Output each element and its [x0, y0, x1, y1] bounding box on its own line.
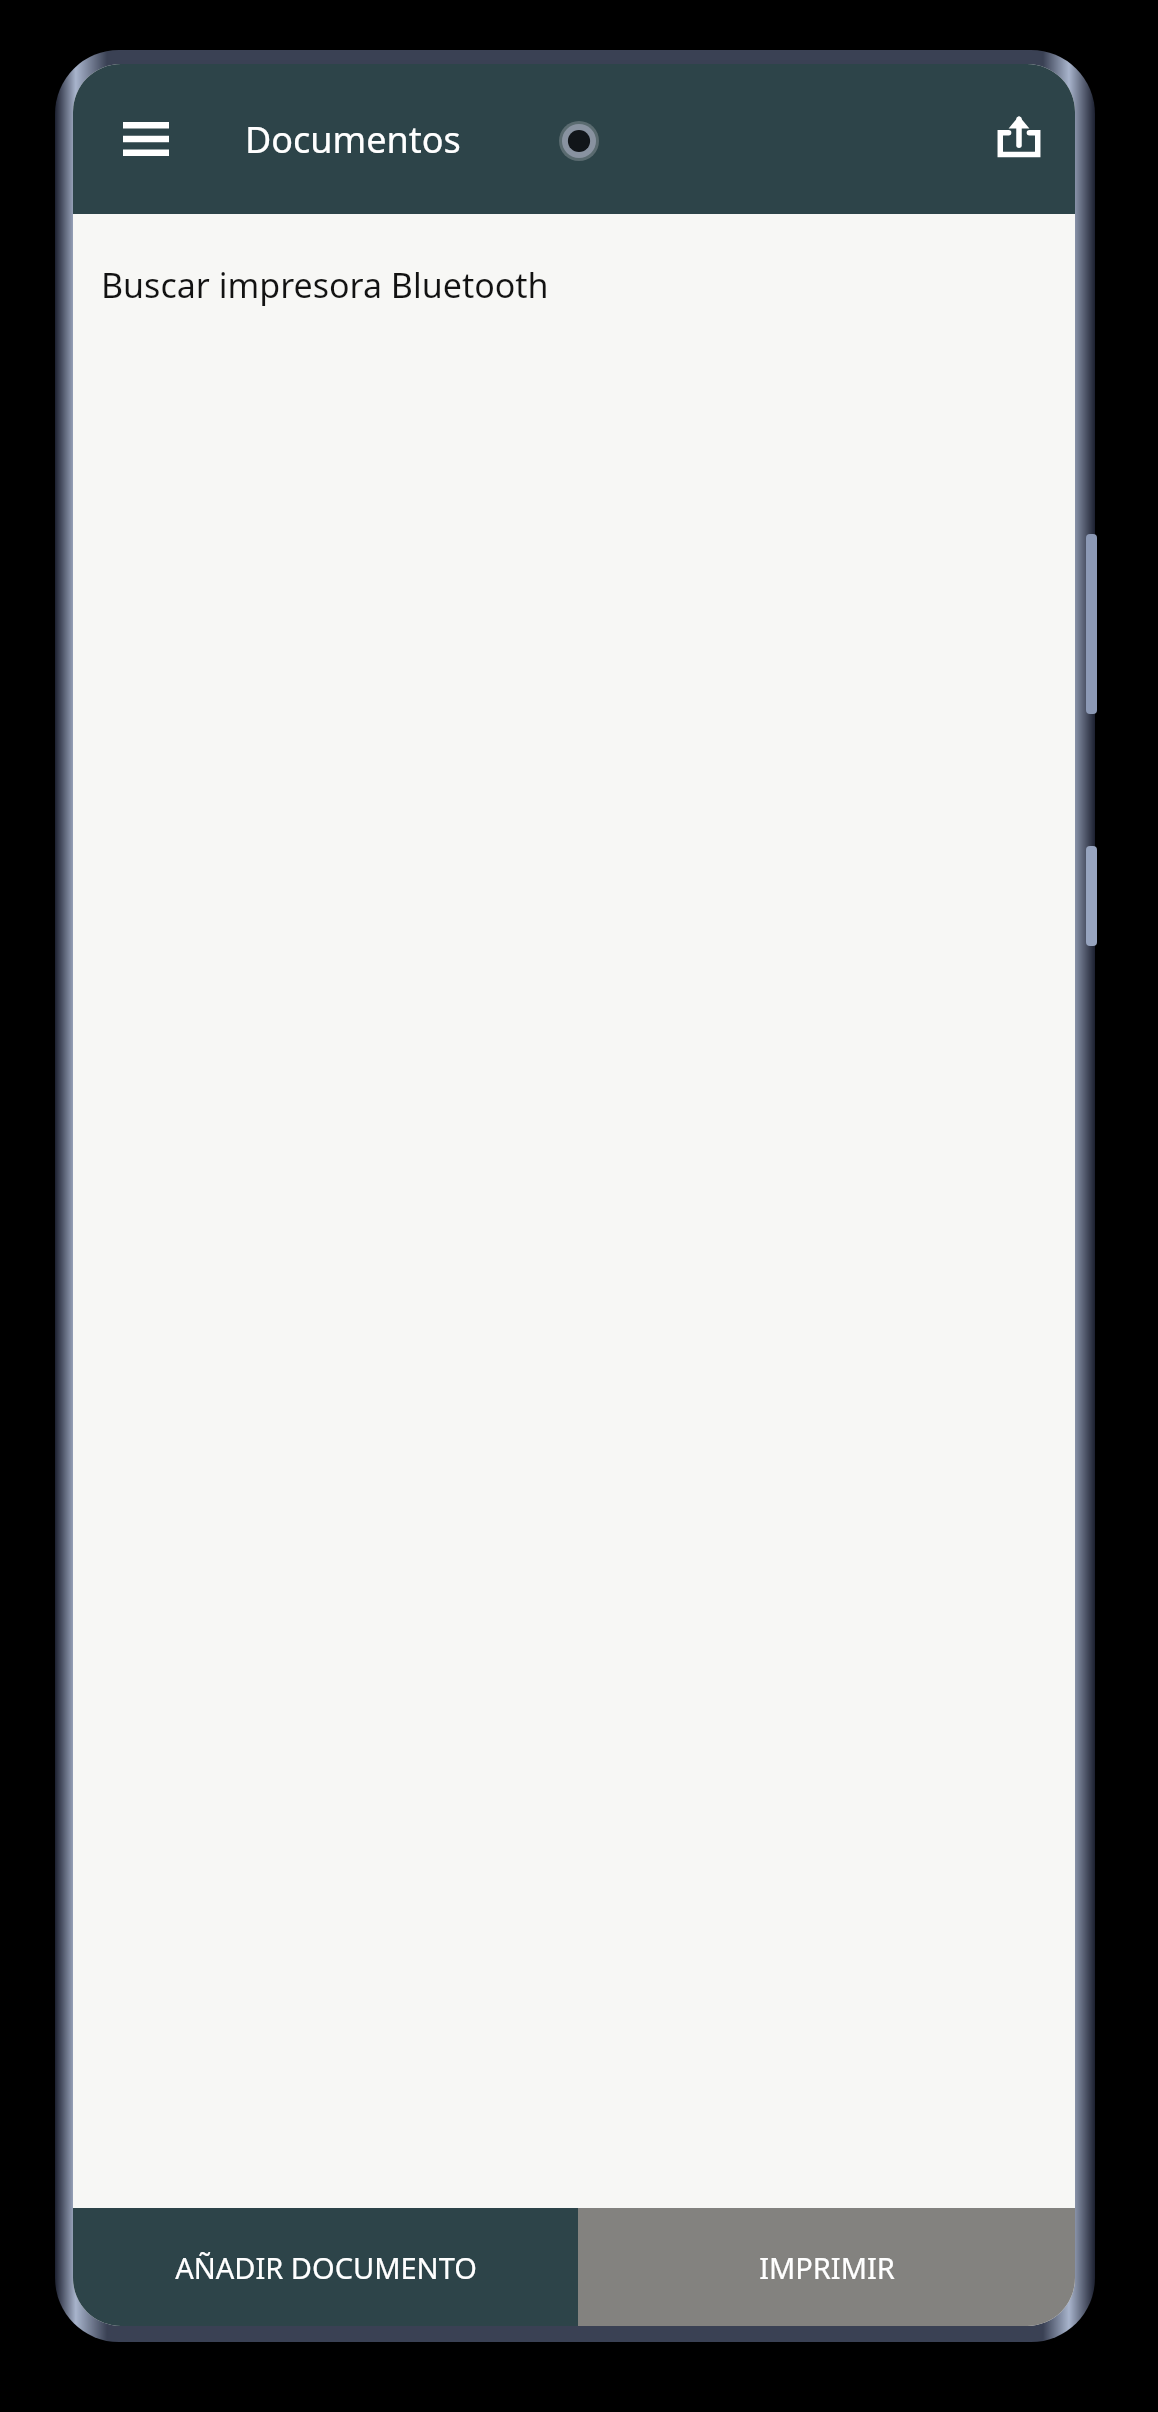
- button[interactable]: Buscar impresora Bluetooth: [101, 262, 549, 308]
- staticText: AÑADIR DOCUMENTO: [175, 2248, 477, 2287]
- button[interactable]: AÑADIR DOCUMENTO: [73, 2208, 578, 2326]
- staticText: Documentos: [245, 115, 461, 164]
- button[interactable]: Menu: [101, 94, 191, 184]
- button[interactable]: IMPRIMIR: [578, 2208, 1075, 2326]
- button[interactable]: Share: [971, 91, 1067, 187]
- staticText: IMPRIMIR: [759, 2248, 895, 2287]
